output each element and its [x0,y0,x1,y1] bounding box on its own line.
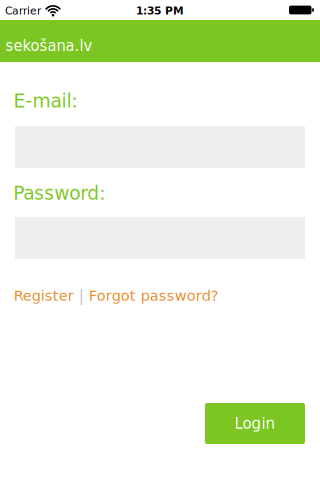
button[interactable]: Login [205,403,305,444]
staticText: Password: [13,182,105,204]
button[interactable]: Forgot password? [89,287,219,304]
staticText: Carrier [5,5,41,17]
staticText: Forgot password? [89,287,219,304]
staticText: sekošana.lv [5,36,92,55]
staticText: Login [234,415,275,432]
staticText: 1:35 PM [136,5,184,17]
staticText: Register [14,287,74,304]
staticText: E-mail: [14,90,78,112]
button[interactable]: Register [14,287,74,304]
staticText: | [79,287,84,305]
